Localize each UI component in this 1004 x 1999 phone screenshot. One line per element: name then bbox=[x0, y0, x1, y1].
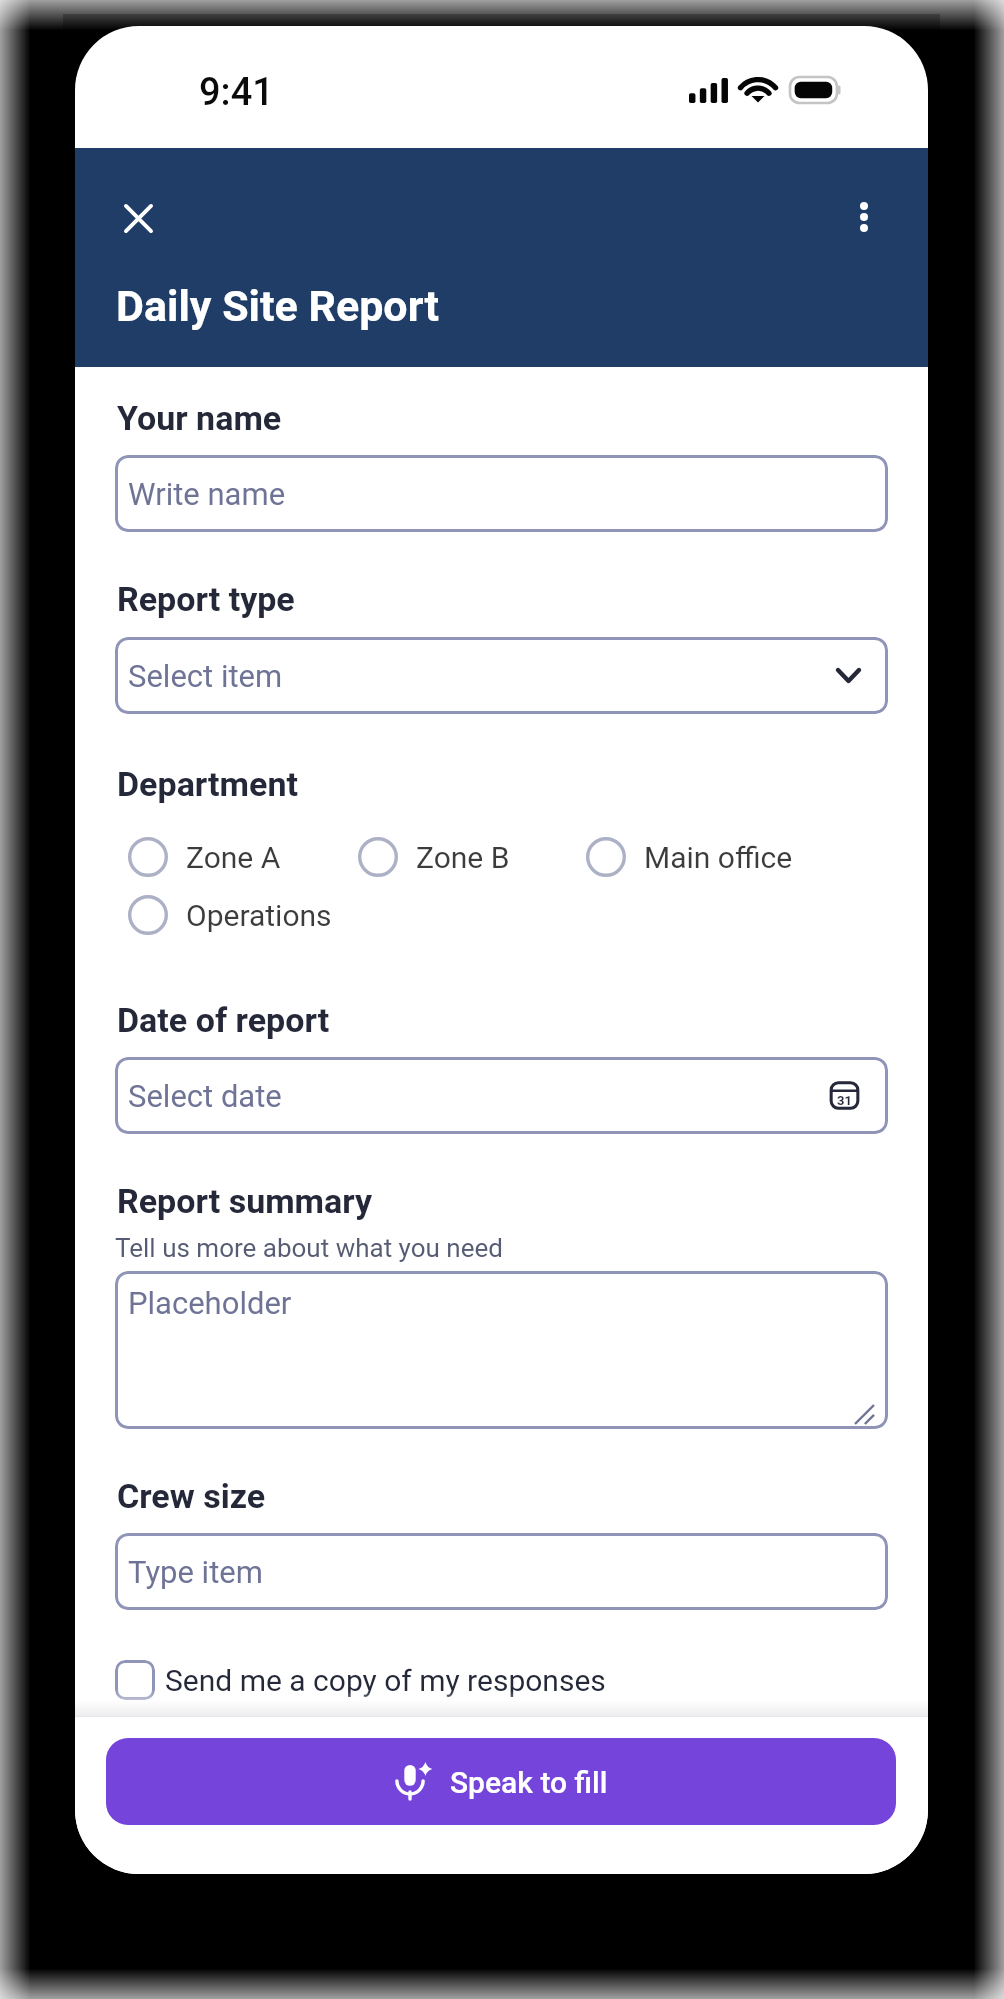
button[interactable]: Close bbox=[102, 182, 174, 254]
staticText: Report type bbox=[117, 579, 295, 619]
staticText: Zone A bbox=[186, 840, 281, 875]
staticText: Select date bbox=[128, 1078, 282, 1114]
button[interactable]: Zone A bbox=[128, 833, 281, 881]
staticText: Zone B bbox=[416, 840, 510, 875]
button[interactable]: Select item bbox=[115, 637, 888, 714]
staticText: Main office bbox=[644, 840, 793, 875]
staticText: Crew size bbox=[117, 1476, 266, 1516]
staticText: Department bbox=[117, 764, 298, 804]
staticText: Date of report bbox=[117, 1000, 330, 1040]
staticText: Your name bbox=[117, 398, 282, 438]
staticText: 31 bbox=[837, 1093, 852, 1108]
staticText: 9:41 bbox=[199, 70, 274, 115]
button[interactable]: Type item bbox=[115, 1533, 888, 1610]
button[interactable]: Select date bbox=[115, 1057, 888, 1134]
staticText: Tell us more about what you need bbox=[115, 1233, 503, 1263]
button[interactable]: More options bbox=[828, 181, 900, 253]
button[interactable]: Speak to fill bbox=[106, 1738, 896, 1825]
button[interactable]: Zone B bbox=[358, 833, 510, 881]
staticText: Daily Site Report bbox=[116, 281, 439, 331]
button[interactable]: Write name bbox=[115, 455, 888, 532]
staticText: Speak to fill bbox=[450, 1765, 608, 1800]
staticText: Operations bbox=[186, 898, 332, 933]
staticText: Select item bbox=[128, 658, 283, 694]
staticText: Write name bbox=[128, 476, 286, 512]
button[interactable]: Operations bbox=[128, 891, 332, 939]
button[interactable]: Placeholder bbox=[115, 1271, 888, 1429]
staticText: Send me a copy of my responses bbox=[165, 1663, 606, 1698]
button[interactable]: Send me a copy of my responses bbox=[115, 1656, 606, 1704]
staticText: Placeholder bbox=[128, 1285, 292, 1321]
staticText: Type item bbox=[128, 1554, 263, 1590]
button[interactable]: Main office bbox=[586, 833, 793, 881]
staticText: Report summary bbox=[117, 1181, 373, 1221]
